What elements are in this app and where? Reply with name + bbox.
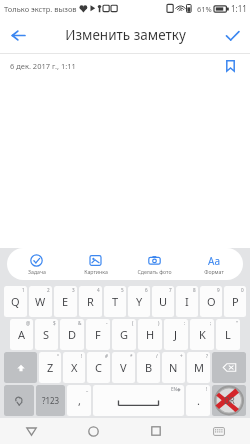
staticText: G [120,327,129,342]
staticText: , [78,393,81,408]
button[interactable]: E [54,286,77,317]
staticText: I [185,294,189,309]
staticText: 2 [47,287,50,293]
button[interactable]: B [137,352,160,383]
staticText: L [225,327,231,342]
staticText: 5 [121,287,124,293]
button[interactable]: H [138,319,162,350]
staticText: ! [81,353,83,359]
staticText: J [174,327,178,342]
staticText: @ [26,320,31,326]
button[interactable]: V [112,352,135,383]
staticText: _ [86,386,89,392]
staticText: ( [132,320,134,326]
staticText: * [130,353,133,359]
button[interactable]: C [87,352,110,383]
button[interactable]: Emoji [4,385,34,416]
button[interactable]: L [216,319,240,350]
button[interactable]: O [200,286,222,317]
staticText: C [95,360,102,375]
staticText: 3 [72,287,75,293]
staticText: 0 [241,287,244,293]
button[interactable]: N [162,352,185,383]
staticText: # [105,353,108,359]
staticText: ) [158,320,160,326]
staticText: & [78,320,82,326]
button[interactable]: G [112,319,136,350]
staticText: Z [47,360,54,375]
button[interactable]: Y [128,286,150,317]
staticText: 1 [22,287,25,293]
button[interactable]: Z [39,352,61,383]
button[interactable]: Space [93,385,184,416]
button[interactable]: Enter [212,385,246,416]
staticText: DR [224,395,235,406]
staticText: H [146,327,155,342]
staticText: . [197,393,200,408]
staticText: Aa [208,254,220,267]
staticText: + [180,353,183,359]
staticText: ° [57,353,59,359]
button[interactable]: R [79,286,102,317]
staticText: - [106,320,108,326]
staticText: / [156,353,158,359]
button[interactable]: Home [62,418,124,444]
staticText: 6 [145,287,148,293]
staticText: Y [136,294,143,309]
staticText: Сделать фото [137,268,172,275]
button[interactable]: W [29,286,52,317]
button[interactable]: Back [0,418,62,444]
button[interactable]: ?123 [36,385,65,416]
staticText: R [87,294,94,309]
button[interactable]: Hide keyboard [187,418,250,444]
button[interactable]: J [164,319,188,350]
staticText: 61% [197,4,212,14]
button[interactable]: Recents [124,418,187,444]
button[interactable]: Back [0,17,36,53]
staticText: Только экстр. вызов [4,4,77,14]
button[interactable]: Aa [184,248,243,280]
button[interactable]: X [63,352,85,383]
button[interactable]: K [190,319,214,350]
staticText: N [169,360,178,375]
staticText: F [95,327,101,342]
button[interactable]: Сделать фото [125,248,184,280]
button[interactable]: D [60,319,84,350]
staticText: Q [11,294,20,309]
button[interactable]: U [152,286,174,317]
button[interactable]: Картинка [66,248,125,280]
button[interactable]: Bookmark [221,57,239,75]
button[interactable]: M [187,352,210,383]
button[interactable]: P [224,286,246,317]
staticText: B [145,360,153,375]
staticText: : [184,320,186,326]
button[interactable]: , [67,385,91,416]
button[interactable]: Shift [4,352,37,383]
button[interactable]: . [186,385,210,416]
button[interactable]: S [35,319,58,350]
button[interactable]: Задача [7,248,66,280]
staticText: Картинка [84,268,108,275]
staticText: M [194,360,204,375]
staticText: W [35,294,46,309]
staticText: X [71,360,78,375]
staticText: K [199,327,206,342]
staticText: T [112,294,119,309]
staticText: 9 [217,287,220,293]
button[interactable]: Save [214,17,250,53]
button[interactable]: Q [4,286,27,317]
staticText: ?123 [42,395,60,406]
staticText: E [62,294,69,309]
staticText: O [207,294,216,309]
button[interactable]: Backspace [212,352,246,383]
button[interactable]: T [104,286,126,317]
staticText: 4 [97,287,100,293]
staticText: " [236,320,238,326]
button[interactable]: I [176,286,198,317]
staticText: 6 дек. 2017 г., 1:11 [10,61,76,71]
staticText: 7 [169,287,172,293]
button[interactable]: A [10,319,33,350]
button[interactable]: F [86,319,110,350]
staticText: Формат [204,268,224,275]
staticText: D [68,327,77,342]
